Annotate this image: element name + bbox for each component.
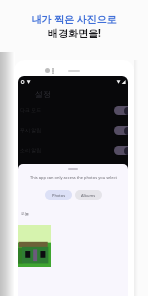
- staticText: 푸시 알림: [20, 127, 42, 134]
- staticText: 배경화면을!: [48, 26, 101, 40]
- staticText: 설정: [35, 89, 51, 99]
- staticText: This app can only access the photos you …: [30, 175, 117, 180]
- staticText: 소리 알림: [20, 147, 42, 154]
- button[interactable]: 다크 모드: [18, 100, 128, 120]
- button[interactable]: Photo: [18, 225, 51, 267]
- button[interactable]: 푸시 알림: [18, 120, 128, 140]
- button[interactable]: Photos: [45, 190, 72, 200]
- staticText: 다크 모드: [20, 107, 42, 114]
- staticText: Photos: [52, 193, 66, 198]
- staticText: 오늘: [21, 211, 29, 216]
- staticText: Albums: [81, 193, 96, 198]
- button[interactable]: Albums: [75, 190, 102, 200]
- button[interactable]: 소리 알림: [18, 140, 128, 160]
- staticText: 내가 찍은 사진으로: [31, 12, 117, 26]
